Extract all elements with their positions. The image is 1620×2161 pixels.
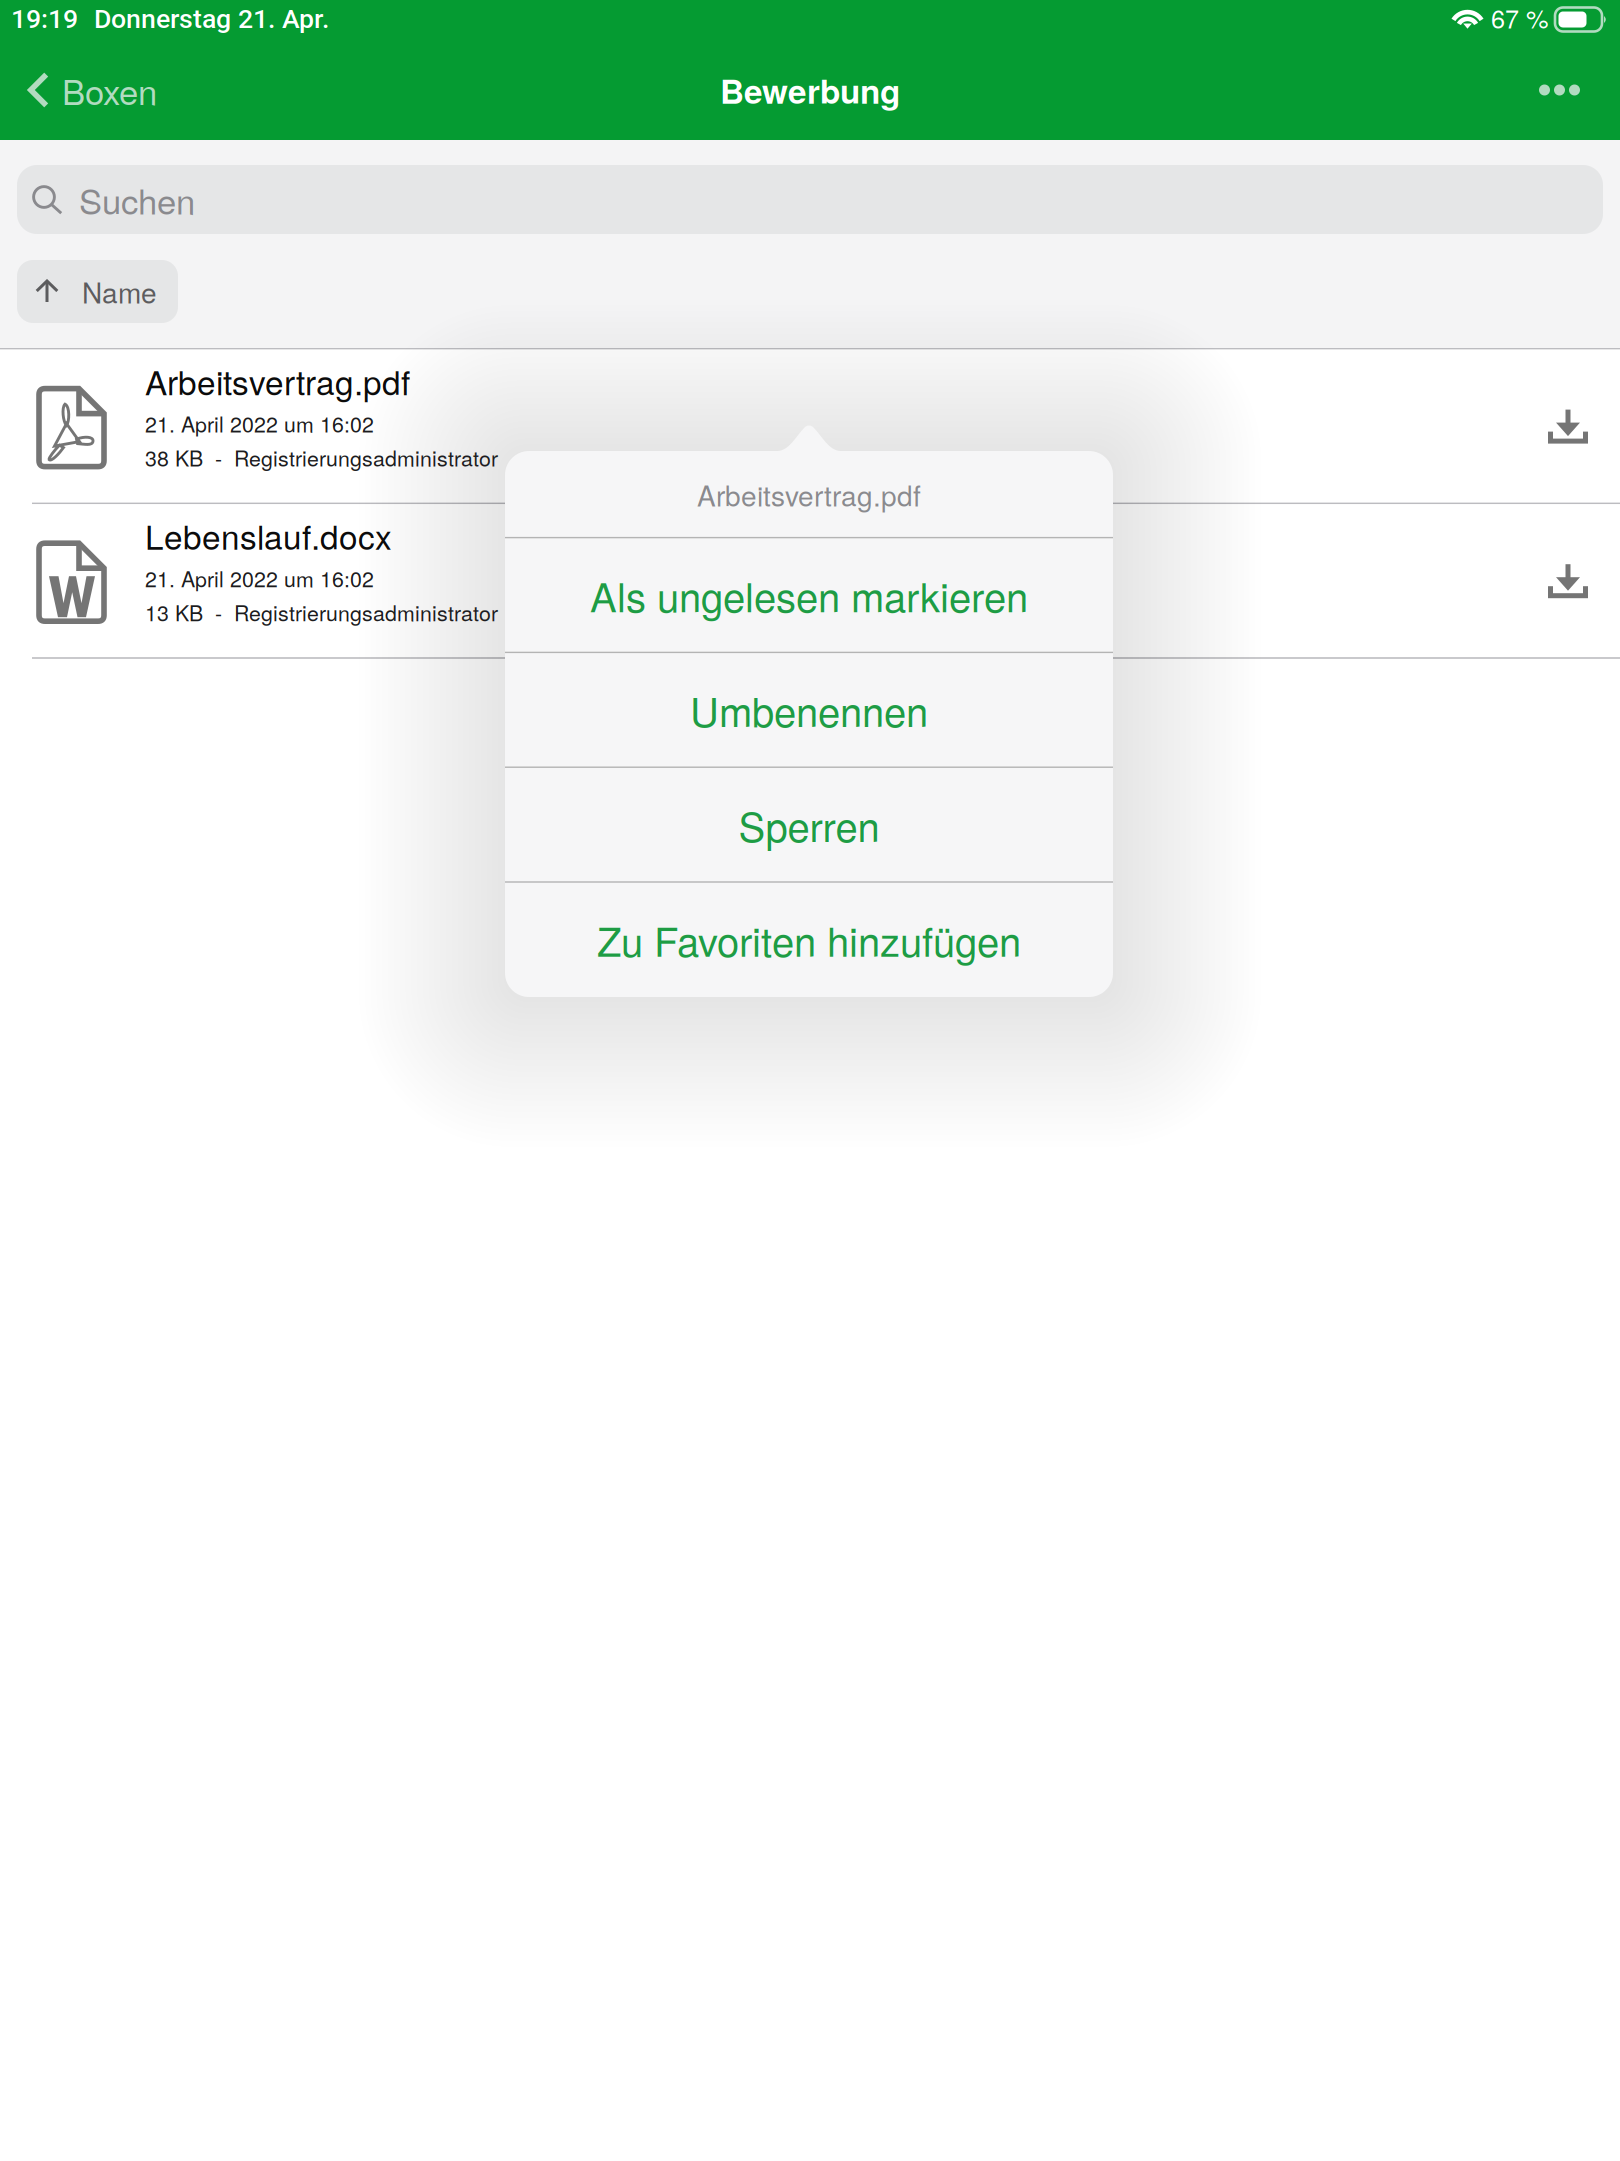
staticText: 21. April 2022 um 16:02 — [145, 563, 374, 593]
staticText: 67 % — [1491, 0, 1549, 36]
staticText: Boxen — [62, 65, 157, 115]
button[interactable]: Zu Favoriten hinzufügen — [505, 883, 1113, 996]
staticText: 38 KB - Registrierungsadministrator — [145, 442, 498, 473]
staticText: Arbeitsvertrag.pdf — [697, 474, 921, 514]
button[interactable]: Umbenennen — [505, 653, 1113, 766]
staticText: Donnerstag 21. Apr. — [94, 3, 329, 35]
button[interactable]: Name — [17, 260, 178, 323]
staticText: Suchen — [79, 175, 195, 224]
staticText: 19:19 — [11, 3, 78, 35]
button[interactable]: Als ungelesen markieren — [505, 538, 1113, 652]
staticText: Zu Favoriten hinzufügen — [597, 911, 1021, 968]
staticText: 13 KB - Registrierungsadministrator — [145, 597, 498, 627]
button[interactable]: Herunterladen — [1548, 563, 1620, 599]
button[interactable]: Lebenslauf.docx — [0, 504, 1620, 657]
staticText: Name — [82, 271, 157, 312]
button[interactable]: Weitere Optionen — [1505, 40, 1620, 140]
staticText: 21. April 2022 um 16:02 — [145, 408, 374, 439]
staticText: Als ungelesen markieren — [590, 566, 1028, 624]
button[interactable]: Boxen — [0, 40, 181, 140]
button[interactable]: Suchen — [17, 165, 1603, 234]
staticText: Lebenslauf.docx — [145, 511, 392, 559]
button[interactable]: Sperren — [505, 768, 1113, 881]
button[interactable]: Herunterladen — [1548, 408, 1620, 444]
staticText: Arbeitsvertrag.pdf — [145, 357, 410, 405]
staticText: Bewerbung — [720, 66, 900, 114]
staticText: Sperren — [738, 796, 879, 853]
staticText: Umbenennen — [690, 681, 928, 738]
button[interactable]: Arbeitsvertrag.pdf — [0, 350, 1620, 503]
